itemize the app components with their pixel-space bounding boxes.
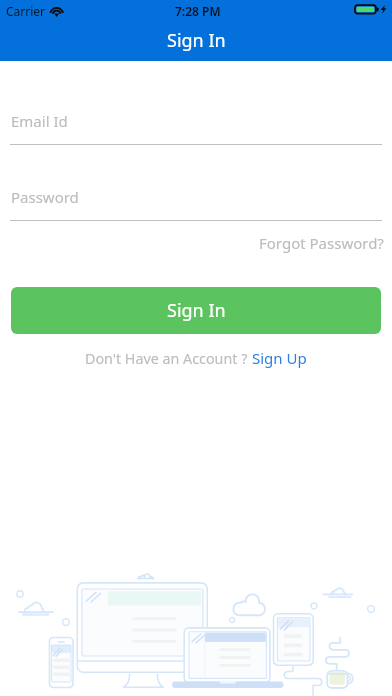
button[interactable]: Sign In [11, 287, 381, 334]
button[interactable]: Forgot Password? [249, 227, 392, 259]
staticText: Sign In [167, 28, 226, 53]
staticText: Don't Have an Account ? [85, 349, 248, 368]
staticText: 7:28 PM [175, 3, 221, 19]
staticText: Password [11, 187, 79, 207]
other: Battery charging [352, 2, 390, 16]
staticText: Carrier [6, 3, 46, 19]
staticText: Sign In [167, 298, 226, 323]
staticText: Forgot Password? [259, 233, 384, 253]
button[interactable]: Sign Up [252, 348, 307, 368]
staticText: Email Id [11, 111, 68, 131]
